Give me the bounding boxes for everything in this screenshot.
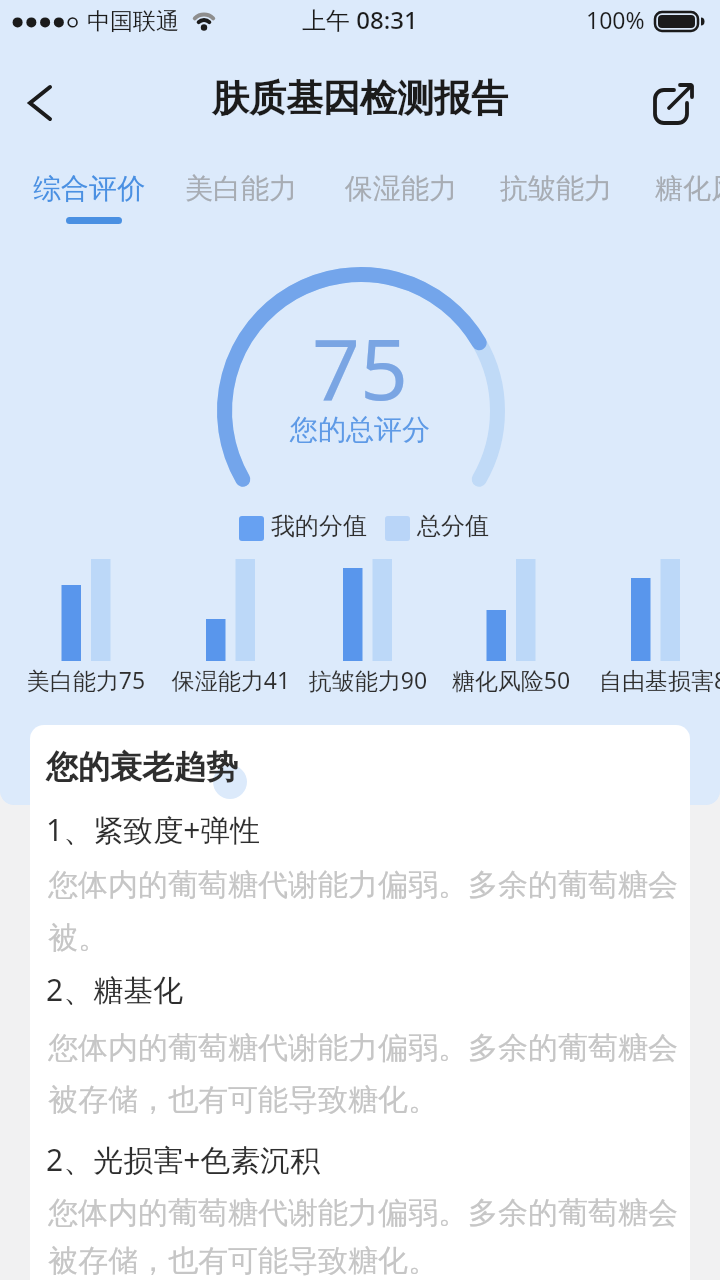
staticText: 75	[0, 310, 720, 424]
staticText: 上午 08:31	[302, 3, 418, 36]
staticText: 100%	[586, 4, 645, 35]
staticText: 被存储，也有可能导致糖化。	[48, 1081, 438, 1119]
button[interactable]: 综合评价	[33, 171, 145, 206]
staticText: 糖化风险50	[421, 664, 601, 695]
button[interactable]	[16, 81, 60, 125]
staticText: 您体内的葡萄糖代谢能力偏弱。多余的葡萄糖会	[48, 1194, 678, 1232]
staticText: 肤质基因检测报告	[212, 75, 508, 122]
button[interactable]: 美白能力	[185, 171, 297, 206]
staticText: 糖化风险	[655, 171, 720, 206]
staticText: 2、光损害+色素沉积	[46, 1139, 321, 1180]
staticText: 抗皱能力90	[278, 664, 458, 695]
staticText: 您的衰老趋势	[46, 747, 238, 787]
staticText: 保湿能力41	[141, 664, 321, 695]
staticText: 抗皱能力	[500, 171, 612, 206]
staticText: 1、紧致度+弹性	[46, 809, 261, 850]
staticText: 被存储，也有可能导致糖化。	[48, 1242, 438, 1280]
button[interactable]	[650, 81, 698, 129]
staticText: 我的分值	[271, 511, 367, 541]
staticText: 您体内的葡萄糖代谢能力偏弱。多余的葡萄糖会	[48, 1029, 678, 1067]
staticText: 中国联通	[87, 7, 179, 36]
staticText: 美白能力	[185, 171, 297, 206]
button[interactable]: 抗皱能力	[500, 171, 612, 206]
staticText: 保湿能力	[345, 171, 457, 206]
staticText: 您体内的葡萄糖代谢能力偏弱。多余的葡萄糖会	[48, 866, 678, 904]
staticText: 综合评价	[33, 171, 145, 206]
staticText: 您的总评分	[0, 412, 720, 447]
staticText: 美白能力75	[0, 664, 176, 695]
staticText: 被。	[48, 919, 108, 957]
button[interactable]: 保湿能力	[345, 171, 457, 206]
staticText: 总分值	[417, 511, 489, 541]
staticText: 自由基损害85	[599, 664, 720, 695]
staticText: 2、糖基化	[46, 969, 184, 1010]
button[interactable]: 糖化风险	[655, 171, 720, 206]
